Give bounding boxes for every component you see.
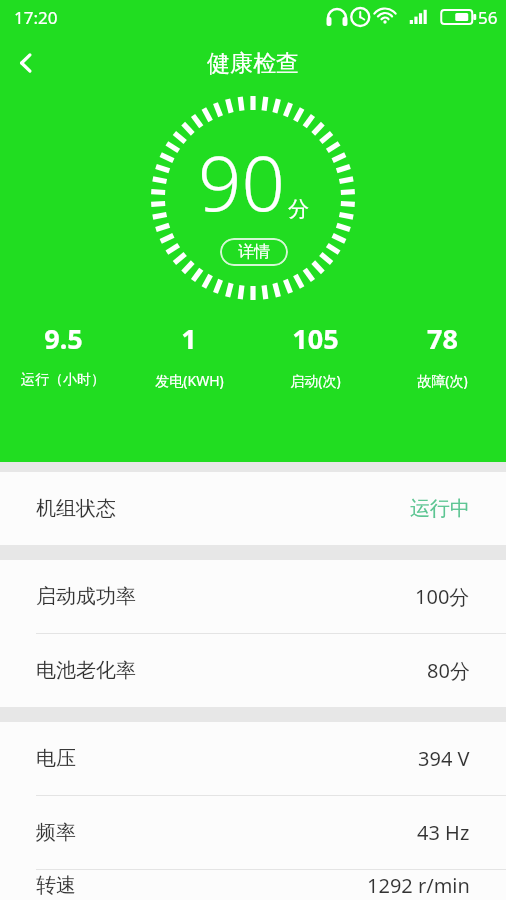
staticText: 运行中 (410, 496, 470, 521)
staticText: 机组状态 (36, 496, 116, 521)
staticText: 100分 (415, 583, 470, 610)
button[interactable]: 机组状态 (0, 472, 506, 545)
staticText: 43 Hz (417, 819, 470, 846)
staticText: 9.5 (44, 320, 83, 357)
staticText: 电压 (36, 746, 76, 771)
staticText: 故障(次) (417, 371, 468, 390)
staticText: 1292 r/min (367, 872, 470, 899)
staticText: 频率 (36, 820, 76, 845)
staticText: 健康检查 (207, 49, 299, 78)
staticText: 90 (198, 130, 285, 234)
staticText: 电池老化率 (36, 658, 136, 683)
staticText: 运行（小时） (21, 371, 105, 389)
staticText: 1 (181, 320, 197, 357)
button[interactable]: 电池老化率 (0, 634, 506, 707)
staticText: 80分 (427, 657, 470, 684)
button[interactable]: Back (0, 37, 52, 89)
staticText: 分 (288, 196, 309, 222)
staticText: 发电(KWH) (155, 371, 224, 390)
staticText: 78 (427, 320, 458, 357)
staticText: 394 V (418, 745, 470, 772)
button[interactable]: 频率 (0, 796, 506, 870)
button[interactable]: 启动成功率 (0, 560, 506, 634)
button[interactable]: 电压 (0, 722, 506, 796)
button[interactable]: 详情 (220, 238, 288, 266)
staticText: 转速 (36, 873, 76, 898)
staticText: 17:20 (14, 6, 58, 29)
staticText: 启动(次) (290, 371, 341, 390)
staticText: 详情 (238, 242, 270, 262)
staticText: 启动成功率 (36, 584, 136, 609)
staticText: 105 (292, 320, 339, 357)
button[interactable]: 转速 (0, 870, 506, 900)
staticText: 56 (478, 6, 498, 29)
